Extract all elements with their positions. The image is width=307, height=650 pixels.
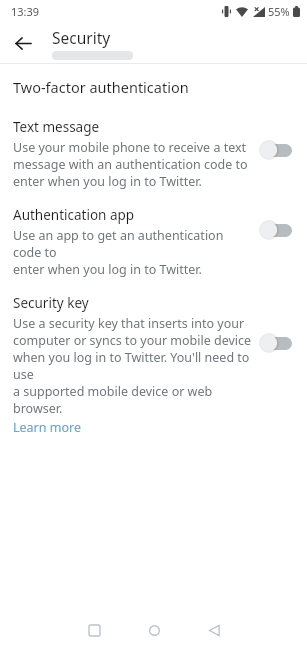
staticText: Text message: [13, 118, 100, 136]
button[interactable]: Toggle: [259, 333, 293, 353]
staticText: 55%: [268, 4, 290, 19]
button[interactable]: Recents: [72, 610, 116, 650]
button[interactable]: Toggle: [259, 140, 293, 160]
staticText: Learn more: [13, 419, 81, 436]
button[interactable]: Toggle: [259, 220, 293, 240]
staticText: Two-factor authentication: [13, 77, 189, 97]
button[interactable]: Home: [132, 610, 176, 650]
staticText: Use an app to get an authentication code…: [13, 227, 253, 278]
staticText: Security key: [13, 294, 89, 312]
button[interactable]: Back: [7, 27, 39, 59]
button[interactable]: Authentication app: [0, 206, 307, 278]
staticText: Security: [52, 27, 111, 48]
button[interactable]: Learn more: [13, 419, 81, 436]
staticText: 13:39: [11, 4, 40, 19]
button[interactable]: Text message: [0, 118, 307, 190]
staticText: Authentication app: [13, 206, 135, 224]
staticText: Use a security key that inserts into you…: [13, 315, 253, 417]
button[interactable]: Security key: [0, 294, 307, 436]
button[interactable]: Back: [192, 610, 236, 650]
staticText: Use your mobile phone to receive a text …: [13, 139, 248, 190]
